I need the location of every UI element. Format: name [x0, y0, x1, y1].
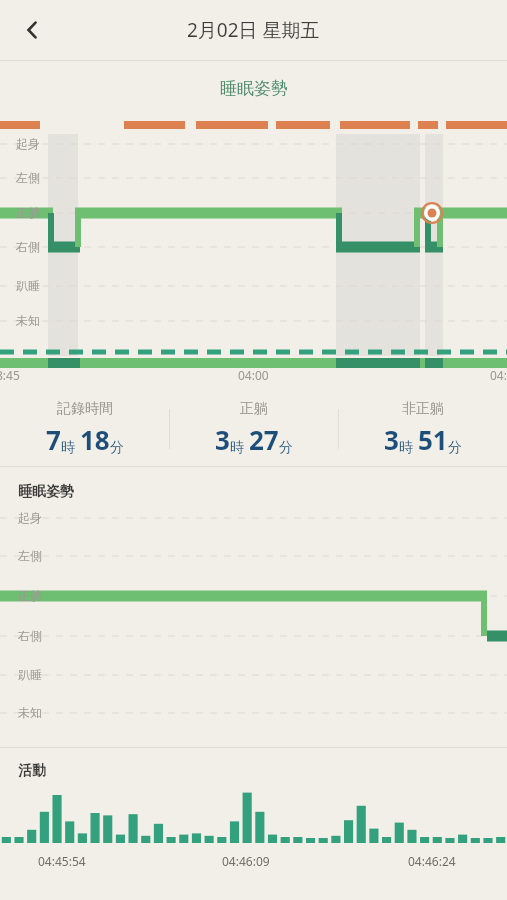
staticText: 右側: [18, 628, 42, 643]
staticText: 分: [110, 439, 124, 457]
staticText: 04:00: [238, 367, 269, 383]
staticText: 睡眠姿勢: [220, 78, 288, 99]
staticText: 正躺: [240, 400, 268, 418]
button[interactable]: 記錄時間: [0, 400, 169, 457]
staticText: 左側: [18, 548, 42, 563]
button[interactable]: 非正躺: [339, 400, 507, 457]
staticText: 8:45: [0, 367, 20, 383]
staticText: 時: [399, 439, 413, 457]
staticText: 04:: [490, 367, 507, 383]
staticText: 51: [418, 422, 448, 457]
staticText: 18: [80, 422, 110, 457]
staticText: 睡眠姿勢: [18, 483, 74, 501]
staticText: 右側: [16, 239, 40, 254]
staticText: 7: [46, 422, 61, 457]
staticText: 趴睡: [16, 278, 40, 293]
staticText: 分: [279, 439, 293, 457]
staticText: 記錄時間: [57, 400, 113, 418]
button[interactable]: 正躺: [170, 400, 338, 457]
staticText: 未知: [18, 705, 42, 720]
staticText: 27: [249, 422, 279, 457]
staticText: 非正躺: [402, 400, 444, 418]
staticText: 3: [384, 422, 399, 457]
staticText: 起身: [16, 136, 40, 151]
staticText: 2月02日 星期五: [187, 17, 320, 43]
staticText: 活動: [18, 762, 46, 780]
staticText: 正躺: [18, 588, 42, 603]
staticText: 時: [61, 439, 75, 457]
staticText: 左側: [16, 170, 40, 185]
staticText: 3: [215, 422, 230, 457]
staticText: 時: [230, 439, 244, 457]
staticText: 未知: [16, 313, 40, 328]
staticText: 04:46:24: [408, 853, 456, 869]
button[interactable]: Back: [10, 8, 54, 52]
staticText: 04:45:54: [38, 853, 86, 869]
staticText: 正躺: [16, 205, 40, 220]
staticText: 起身: [18, 510, 42, 525]
staticText: 04:46:09: [222, 853, 270, 869]
staticText: 分: [448, 439, 462, 457]
staticText: 趴睡: [18, 667, 42, 682]
